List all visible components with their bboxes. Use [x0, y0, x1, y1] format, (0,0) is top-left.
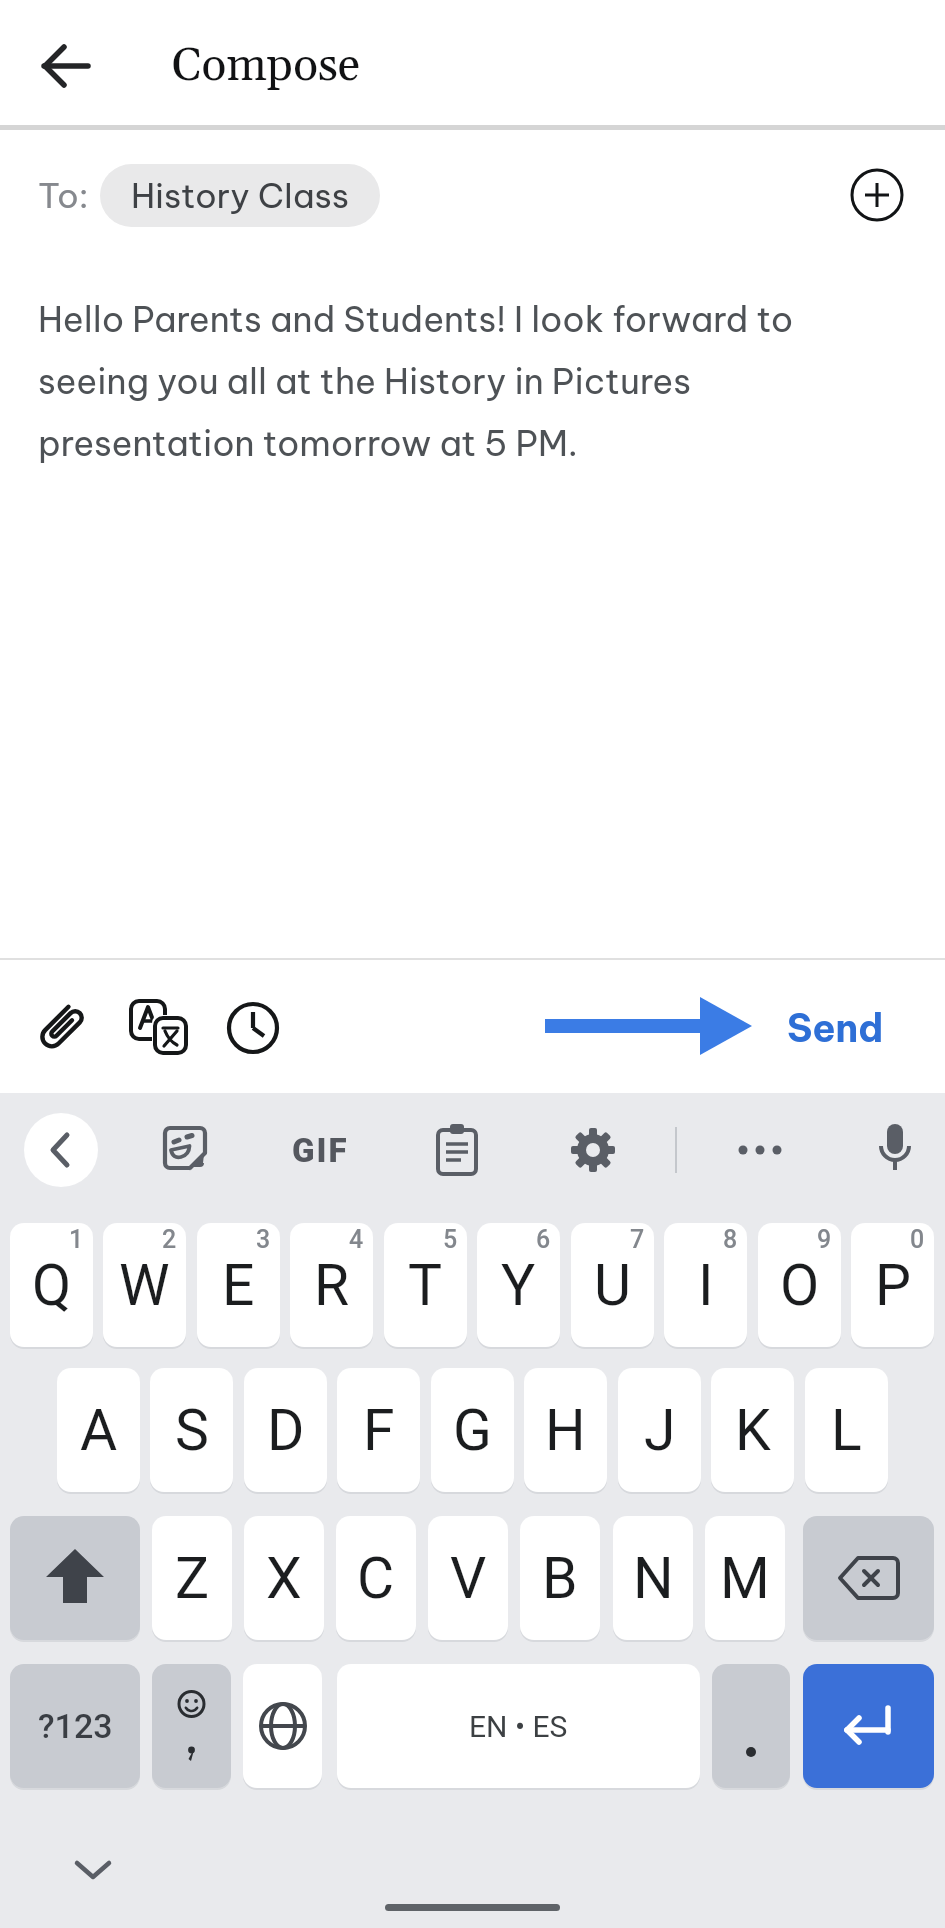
button[interactable] [712, 1664, 790, 1788]
button[interactable] [849, 167, 905, 223]
staticText: K [735, 1397, 771, 1464]
staticText: History Class [131, 174, 350, 217]
button[interactable]: A [57, 1368, 140, 1492]
staticText: A [80, 1397, 118, 1464]
staticText: 9 [817, 1225, 832, 1254]
button[interactable]: Q [10, 1223, 93, 1347]
button[interactable] [225, 1000, 281, 1056]
staticText: 0 [910, 1225, 925, 1254]
button[interactable]: Y [477, 1223, 560, 1347]
button[interactable]: O [758, 1223, 841, 1347]
button[interactable]: History Class [100, 164, 380, 227]
button[interactable]: H [524, 1368, 607, 1492]
button[interactable] [0, 0, 945, 125]
staticText: C [357, 1545, 395, 1612]
button[interactable] [803, 1516, 934, 1640]
staticText: 1 [69, 1225, 84, 1254]
button[interactable]: N [613, 1516, 693, 1640]
button[interactable] [726, 1126, 794, 1174]
staticText: T [408, 1252, 443, 1319]
button[interactable] [163, 1126, 207, 1170]
button[interactable]: G [431, 1368, 514, 1492]
button[interactable]: K [711, 1368, 794, 1492]
button[interactable]: I [664, 1223, 747, 1347]
staticText: V [450, 1545, 487, 1612]
staticText: 7 [630, 1225, 645, 1254]
button[interactable]: Z [152, 1516, 232, 1640]
staticText: J [644, 1397, 676, 1464]
staticText: 6 [536, 1225, 551, 1254]
staticText: N [633, 1545, 674, 1612]
staticText: Q [32, 1252, 72, 1319]
button[interactable]: R [290, 1223, 373, 1347]
staticText: M [720, 1545, 770, 1612]
staticText: W [119, 1252, 170, 1319]
staticText: 2 [162, 1225, 177, 1254]
button[interactable] [42, 42, 90, 90]
staticText: R [314, 1252, 350, 1319]
staticText: Compose [172, 37, 361, 95]
staticText: X [266, 1545, 302, 1612]
button[interactable] [128, 998, 188, 1058]
staticText: To: [38, 174, 89, 217]
button[interactable] [24, 1113, 98, 1187]
button[interactable]: C [336, 1516, 416, 1640]
button[interactable]: B [520, 1516, 600, 1640]
staticText: F [363, 1397, 395, 1464]
staticText: Hello Parents and Students! I look forwa… [38, 297, 794, 465]
staticText: ?123 [38, 1706, 113, 1746]
button[interactable]: S [150, 1368, 233, 1492]
staticText: B [542, 1545, 578, 1612]
staticText: G [453, 1397, 492, 1464]
button[interactable]: Send [770, 998, 900, 1058]
button[interactable]: M [705, 1516, 785, 1640]
button[interactable]: X [244, 1516, 324, 1640]
button[interactable] [431, 1124, 483, 1176]
staticText: H [545, 1397, 586, 1464]
staticText: 5 [443, 1225, 458, 1254]
button[interactable]: ?123 [10, 1664, 140, 1788]
staticText: 3 [256, 1225, 271, 1254]
button[interactable]: J [618, 1368, 701, 1492]
button[interactable]: P [851, 1223, 934, 1347]
button[interactable]: L [805, 1368, 888, 1492]
staticText: Send [787, 1004, 884, 1052]
staticText: GIF [292, 1131, 349, 1170]
button[interactable] [152, 1664, 231, 1788]
button[interactable]: W [103, 1223, 186, 1347]
button[interactable] [569, 1126, 617, 1174]
button[interactable] [30, 998, 90, 1058]
button[interactable] [10, 1516, 140, 1640]
button[interactable]: V [428, 1516, 508, 1640]
button[interactable]: D [244, 1368, 327, 1492]
staticText: S [175, 1397, 209, 1464]
staticText: Y [501, 1252, 536, 1319]
staticText: Z [175, 1545, 210, 1612]
staticText: E [222, 1252, 255, 1319]
staticText: 4 [349, 1225, 364, 1254]
button[interactable] [73, 1856, 113, 1884]
button[interactable] [243, 1664, 322, 1788]
button[interactable]: F [337, 1368, 420, 1492]
button[interactable]: EN • ES [337, 1664, 700, 1788]
staticText: U [594, 1252, 631, 1319]
button[interactable] [869, 1122, 921, 1180]
button[interactable]: U [571, 1223, 654, 1347]
staticText: I [698, 1252, 714, 1319]
staticText: P [875, 1252, 911, 1319]
staticText: EN • ES [469, 1709, 568, 1744]
button[interactable]: E [197, 1223, 280, 1347]
button[interactable]: T [384, 1223, 467, 1347]
staticText: O [780, 1252, 820, 1319]
staticText: 8 [723, 1225, 738, 1254]
button[interactable] [803, 1664, 934, 1788]
staticText: D [267, 1397, 305, 1464]
staticText: L [831, 1397, 862, 1464]
